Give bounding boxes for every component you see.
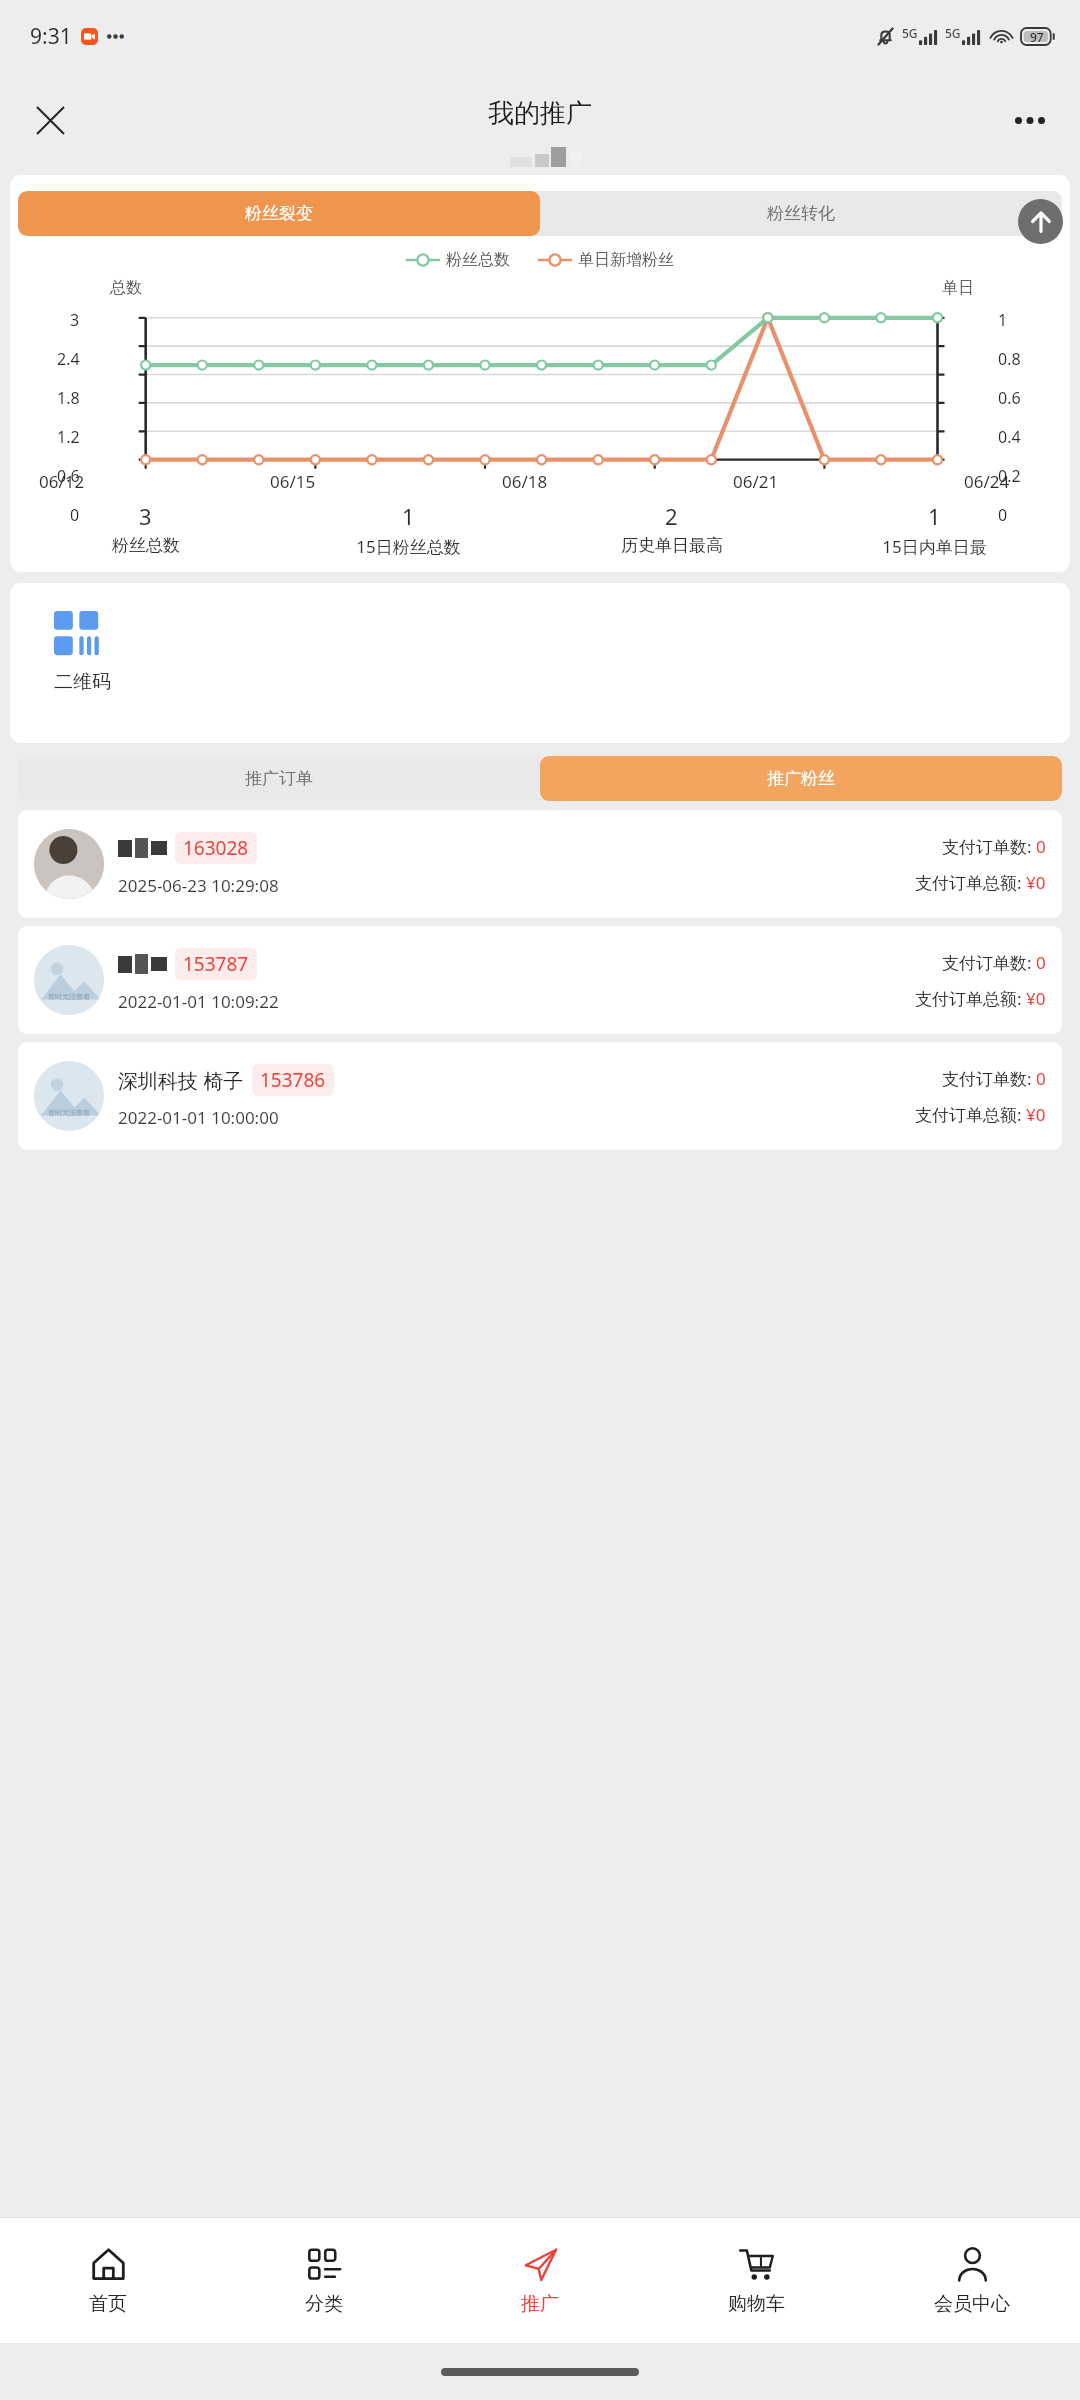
staticText: 暂时无法查看 [48,992,90,1001]
staticText: 06/18 [502,470,548,493]
button[interactable]: 粉丝转化 [540,191,1062,236]
button[interactable]: 二维码 [54,611,111,694]
staticText: 153787 [183,951,249,977]
staticText: 0.8 [998,348,1021,368]
staticText: 粉丝总数 [112,535,180,556]
staticText: ¥0 [1026,1103,1046,1126]
staticText: 06/12 [39,470,85,493]
staticText: 粉丝总数 [446,250,510,270]
staticText: 我的推广 [488,97,592,130]
staticText: 0 [1036,951,1046,974]
staticText: 3 [70,309,80,329]
button[interactable]: 分类 [216,2218,432,2343]
button[interactable]: 会员中心 [864,2218,1080,2343]
staticText: 0.6 [998,387,1021,407]
staticText: 1.8 [57,387,80,407]
staticText: 单日 [942,278,974,298]
staticText: 0.4 [998,426,1021,446]
staticText: 历史单日最高 [621,535,723,556]
button[interactable]: 推广 [432,2218,648,2343]
staticText: ¥0 [1026,871,1046,894]
staticText: 1 [402,501,415,531]
staticText: 会员中心 [934,2292,1010,2316]
button[interactable]: 暂时无法查看 [18,926,1062,1034]
staticText: 0 [1036,835,1046,858]
staticText: 163028 [183,835,249,861]
staticText: 0.6 [57,465,80,485]
staticText: 06/21 [733,470,779,493]
staticText: ¥0 [1026,987,1046,1010]
button[interactable]: 暂时无法查看 [18,1042,1062,1150]
staticText: 二维码 [54,670,111,694]
staticText: 06/24 [964,470,1010,493]
staticText: 3 [139,501,152,531]
staticText: 0 [70,504,80,524]
staticText: 9:31 [30,22,72,51]
staticText: 0 [998,504,1008,524]
staticText: 推广 [521,2292,559,2316]
staticText: 深圳科技 椅子 [118,1067,244,1094]
staticText: 1.2 [57,426,80,446]
button[interactable]: 粉丝裂变 [18,191,540,236]
staticText: 支付订单总额: [915,987,1026,1010]
staticText: 购物车 [728,2292,785,2316]
staticText: 推广粉丝 [767,768,835,789]
button[interactable]: 推广订单 [18,756,540,801]
staticText: 2025-06-23 10:29:08 [118,874,279,897]
staticText: 粉丝转化 [767,203,835,224]
staticText: 1 [928,501,941,531]
staticText: 15日内单日最 [882,535,987,558]
staticText: 0 [1036,1067,1046,1090]
staticText: 0.2 [998,465,1021,485]
staticText: 支付订单数: [942,951,1036,974]
staticText: 153786 [260,1067,326,1093]
staticText: 支付订单总额: [915,1103,1026,1126]
staticText: 推广订单 [245,768,313,789]
staticText: 单日新增粉丝 [578,250,674,270]
staticText: 5G [902,25,918,41]
staticText: 总数 [110,278,142,298]
button[interactable]: Scroll to top [1018,199,1063,244]
button[interactable]: 163028 [18,810,1062,918]
staticText: 2022-01-01 10:09:22 [118,990,279,1013]
staticText: 粉丝裂变 [245,203,313,224]
staticText: 暂时无法查看 [48,1108,90,1117]
button[interactable]: More options [1002,92,1058,148]
staticText: 06/15 [270,470,316,493]
staticText: 支付订单数: [942,1067,1036,1090]
staticText: 2022-01-01 10:00:00 [118,1106,279,1129]
staticText: 2.4 [57,348,80,368]
staticText: 支付订单总额: [915,871,1026,894]
staticText: 5G [945,25,961,41]
button[interactable]: Close [22,92,78,148]
staticText: 支付订单数: [942,835,1036,858]
staticText: 15日粉丝总数 [356,535,461,558]
button[interactable]: 推广粉丝 [540,756,1062,801]
button[interactable]: 首页 [0,2218,216,2343]
staticText: 1 [998,309,1008,329]
staticText: 分类 [305,2292,343,2316]
button[interactable]: 购物车 [648,2218,864,2343]
staticText: 首页 [89,2292,127,2316]
staticText: 97 [1030,29,1044,45]
staticText: 2 [665,501,678,531]
